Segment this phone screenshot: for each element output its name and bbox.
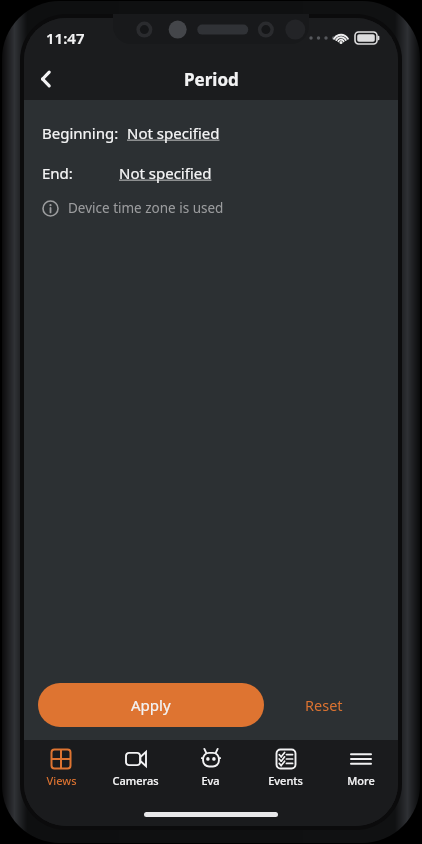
button[interactable]: Back — [24, 58, 68, 100]
button[interactable]: Eva — [173, 740, 248, 796]
staticText: Period — [184, 68, 239, 91]
button[interactable]: Views — [24, 740, 98, 796]
button[interactable]: Events — [248, 740, 323, 796]
button[interactable]: Not specified — [127, 123, 220, 143]
staticText: Cameras — [112, 773, 159, 788]
staticText: Not specified — [119, 163, 212, 183]
button[interactable]: Reset — [264, 683, 384, 727]
staticText: Events — [268, 773, 303, 788]
button[interactable]: More — [323, 740, 398, 796]
staticText: End: — [42, 163, 73, 183]
staticText: Reset — [305, 695, 343, 715]
staticText: Apply — [131, 695, 171, 715]
button[interactable]: Not specified — [119, 163, 212, 183]
staticText: Device time zone is used — [68, 199, 224, 217]
button[interactable]: Cameras — [98, 740, 173, 796]
staticText: Eva — [201, 773, 220, 788]
button[interactable]: Apply — [38, 683, 264, 727]
staticText: 11:47 — [46, 28, 85, 48]
staticText: More — [347, 773, 375, 788]
staticText: Not specified — [127, 123, 220, 143]
staticText: Views — [46, 773, 77, 788]
staticText: Beginning: — [42, 123, 119, 143]
